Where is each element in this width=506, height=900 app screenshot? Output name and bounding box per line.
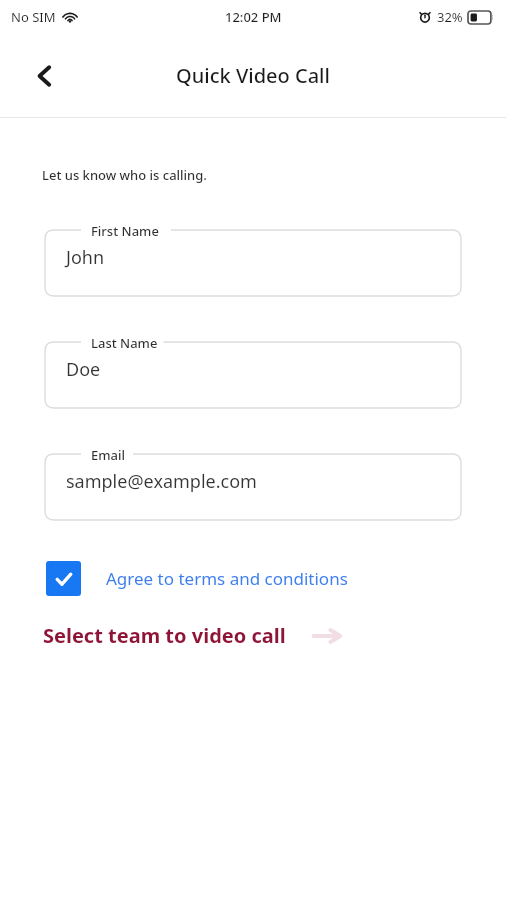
- button[interactable]: Email: [45, 446, 461, 520]
- staticText: Email: [91, 446, 126, 464]
- staticText: Doe: [66, 357, 101, 382]
- staticText: Quick Video Call: [176, 62, 330, 89]
- button[interactable]: Back: [22, 54, 66, 98]
- staticText: Let us know who is calling.: [42, 166, 207, 184]
- staticText: Last Name: [91, 334, 158, 352]
- staticText: Agree to terms and conditions: [106, 567, 348, 590]
- button[interactable]: Agree to terms and conditions: [46, 561, 348, 596]
- other: Continue: [313, 626, 342, 646]
- staticText: Select team to video call: [43, 622, 286, 649]
- staticText: 12:02 PM: [225, 8, 282, 26]
- staticText: First Name: [91, 222, 159, 240]
- button[interactable]: Select team to video call: [43, 622, 342, 649]
- staticText: John: [66, 245, 105, 270]
- button[interactable]: Last Name: [45, 334, 461, 408]
- staticText: 32%: [437, 8, 463, 26]
- staticText: No SIM: [11, 8, 56, 26]
- staticText: sample@example.com: [66, 469, 257, 494]
- button[interactable]: First Name: [45, 222, 461, 296]
